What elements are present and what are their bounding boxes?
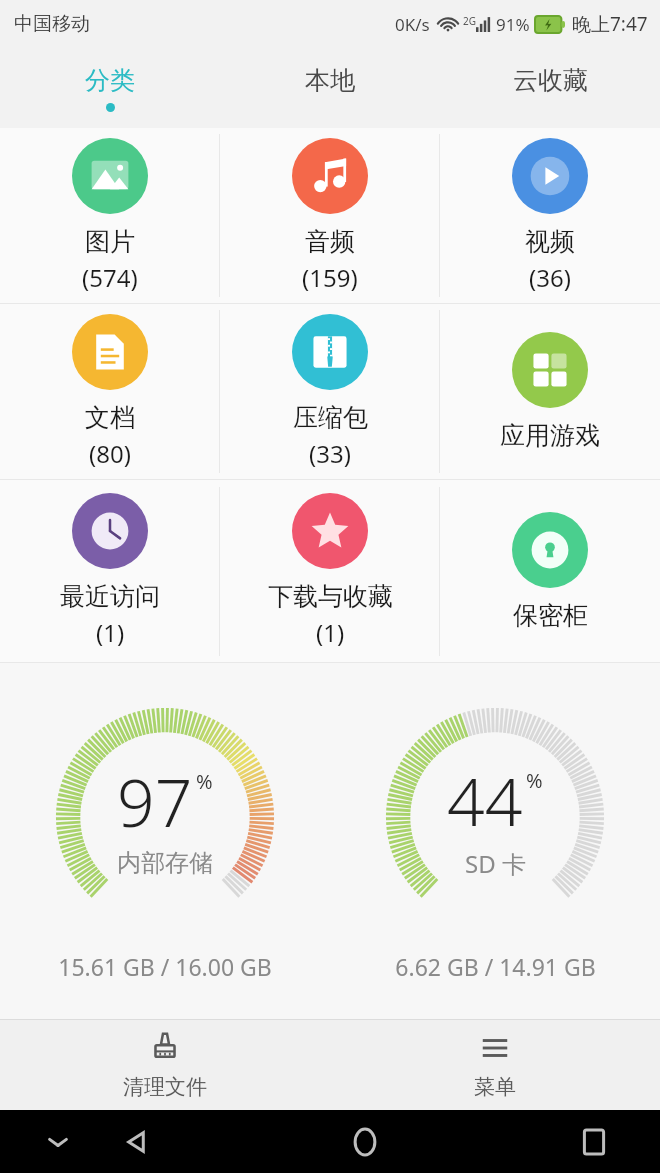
staticText: 内部存储	[117, 848, 213, 878]
staticText: 91%	[496, 13, 530, 36]
button[interactable]: 视频	[440, 128, 660, 303]
button[interactable]: 下载与收藏	[220, 480, 440, 662]
button[interactable]: 图片	[0, 128, 220, 303]
staticText: 压缩包	[293, 402, 368, 433]
staticText: 本地	[305, 65, 355, 96]
staticText: 下载与收藏	[268, 581, 393, 612]
button[interactable]: 最近访问	[0, 480, 220, 662]
staticText: 图片	[85, 226, 135, 257]
staticText: (159)	[302, 261, 358, 294]
button[interactable]: Hide	[38, 1122, 78, 1162]
staticText: 最近访问	[60, 581, 160, 612]
staticText: 云收藏	[513, 65, 588, 96]
staticText: 15.61 GB / 16.00 GB	[58, 951, 272, 982]
staticText: 菜单	[474, 1074, 516, 1100]
button[interactable]: 菜单	[330, 1020, 660, 1110]
button[interactable]: 97	[0, 663, 330, 1019]
staticText: 晚上7:47	[572, 11, 648, 37]
button[interactable]: Recents	[568, 1116, 620, 1168]
staticText: (1)	[96, 616, 125, 649]
button[interactable]: 清理文件	[0, 1020, 330, 1110]
staticText: 保密柜	[513, 600, 588, 631]
staticText: 44	[447, 755, 523, 845]
staticText: %	[526, 767, 543, 794]
staticText: 清理文件	[123, 1074, 207, 1100]
staticText: %	[196, 768, 213, 795]
button[interactable]: 应用游戏	[440, 304, 660, 479]
staticText: 分类	[85, 65, 135, 96]
button[interactable]: Home	[339, 1116, 391, 1168]
staticText: SD 卡	[465, 847, 526, 880]
staticText: 文档	[85, 402, 135, 433]
button[interactable]: 云收藏	[440, 48, 660, 128]
staticText: 6.62 GB / 14.91 GB	[395, 951, 596, 982]
staticText: 97	[117, 756, 193, 846]
button[interactable]: 本地	[220, 48, 440, 128]
staticText: 中国移动	[14, 12, 90, 36]
staticText: (1)	[316, 616, 345, 649]
button[interactable]: 文档	[0, 304, 220, 479]
staticText: (36)	[529, 261, 571, 294]
staticText: (574)	[82, 261, 138, 294]
staticText: 应用游戏	[500, 420, 600, 451]
button[interactable]: Back	[110, 1116, 162, 1168]
button[interactable]: 压缩包	[220, 304, 440, 479]
button[interactable]: 44	[330, 663, 660, 1019]
button[interactable]: 音频	[220, 128, 440, 303]
staticText: 视频	[525, 226, 575, 257]
staticText: 2G	[463, 14, 476, 28]
button[interactable]: 保密柜	[440, 480, 660, 662]
staticText: (80)	[89, 437, 131, 470]
staticText: 音频	[305, 226, 355, 257]
staticText: 0K/s	[395, 13, 430, 36]
staticText: (33)	[309, 437, 351, 470]
button[interactable]: 分类	[0, 48, 220, 128]
